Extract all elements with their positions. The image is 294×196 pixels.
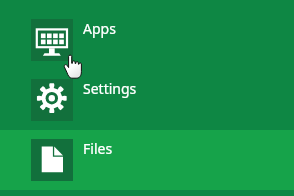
other: Settings (31, 79, 73, 121)
button[interactable]: Files (0, 130, 294, 190)
other: Apps (31, 19, 73, 61)
staticText: Settings (83, 79, 137, 98)
staticText: Files (83, 139, 113, 158)
staticText: Apps (83, 19, 116, 38)
other: Files (31, 139, 73, 181)
button[interactable]: Apps (0, 10, 294, 70)
button[interactable]: Settings (0, 70, 294, 130)
